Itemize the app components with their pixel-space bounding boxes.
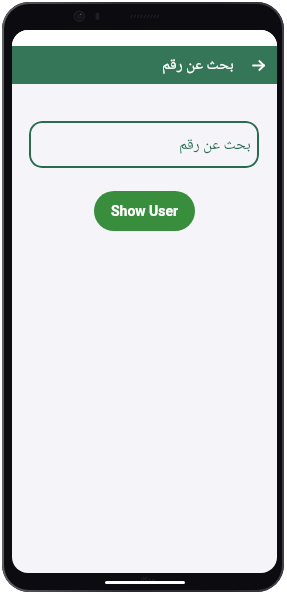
staticText: موكاب xyxy=(136,573,155,587)
staticText: بحث عن رقم xyxy=(162,52,234,78)
button[interactable]: بحث عن رقم xyxy=(29,121,259,168)
staticText: Show User xyxy=(111,203,179,219)
button[interactable]: Back xyxy=(246,53,270,77)
staticText: بحث عن رقم xyxy=(179,132,251,158)
button[interactable]: Show User xyxy=(94,191,195,231)
